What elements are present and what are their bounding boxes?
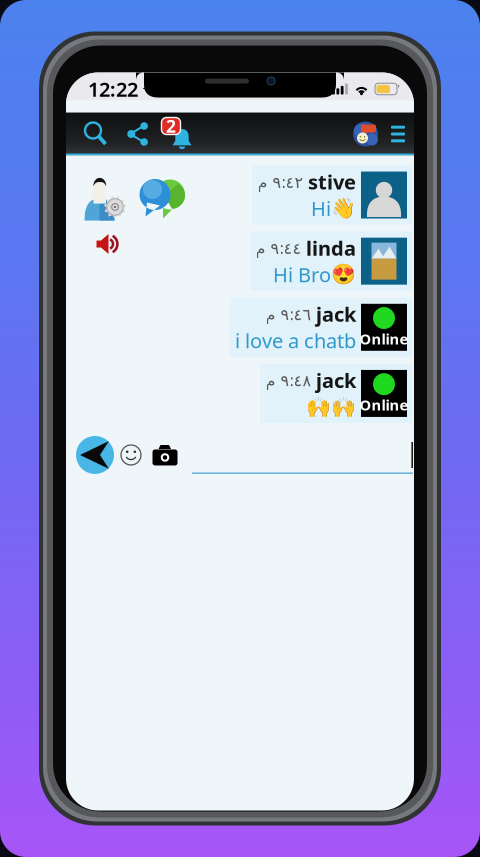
button[interactable]: Account settings [84,173,128,220]
staticText: 😍 [331,263,356,286]
staticText: ٩:٤٦ م [265,303,311,325]
button[interactable]: Menu [382,116,414,151]
staticText: jack [316,301,356,327]
staticText: ٩:٤٢ م [257,171,303,192]
staticText: jack [316,367,356,393]
button[interactable]: Sound [96,233,120,254]
button[interactable]: ٩:٤٦ م [230,298,412,357]
staticText: Online [359,329,408,349]
button[interactable]: Chats [138,178,187,219]
button[interactable]: Send [76,436,114,474]
staticText: 2 [166,114,176,137]
staticText: 🙌🙌 [306,395,356,418]
staticText: Hi Bro [273,261,331,288]
button[interactable]: Camera [148,444,182,466]
staticText: 👋 [331,197,356,220]
staticText: 12:22 [88,76,138,102]
staticText: linda [306,235,356,261]
staticText: stive [308,168,356,195]
staticText: ٩:٤٤ م [255,237,301,258]
staticText: Online [359,395,408,415]
button[interactable]: Search [76,115,117,152]
button[interactable]: Share [117,115,158,152]
staticText: Hi [311,195,331,222]
button[interactable]: ٩:٤٨ م [260,364,412,423]
button[interactable]: ٩:٤٢ م [252,165,412,225]
staticText: i love a chatb [235,327,356,354]
staticText: ٩:٤٨ م [265,369,311,391]
button[interactable]: Emoji [114,443,148,467]
button[interactable]: Notifications [158,116,196,152]
button[interactable]: Profile [349,117,382,150]
button[interactable]: ٩:٤٤ م [250,232,412,291]
